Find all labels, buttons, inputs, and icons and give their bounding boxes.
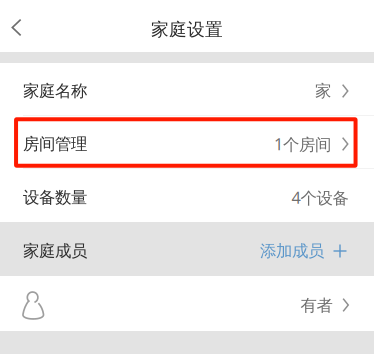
button[interactable]: 房间管理 <box>0 116 374 168</box>
staticText: 设备数量 <box>23 187 87 208</box>
button[interactable]: 有者 <box>0 276 374 331</box>
staticText: 家庭设置 <box>151 18 223 41</box>
staticText: 1个房间 <box>274 133 331 155</box>
staticText: 房间管理 <box>23 134 87 154</box>
staticText: 有者 <box>300 295 332 316</box>
staticText: 添加成员 <box>260 241 324 261</box>
staticText: 4个设备 <box>291 186 348 209</box>
staticText: 家 <box>315 81 331 101</box>
button[interactable]: 家庭名称 <box>0 63 374 115</box>
staticText: 家庭名称 <box>23 81 87 101</box>
button[interactable]: 添加成员 <box>260 239 347 259</box>
button[interactable]: Back <box>0 3 32 49</box>
staticText: 家庭成员 <box>23 241 87 261</box>
button[interactable]: 设备数量 <box>0 169 374 222</box>
